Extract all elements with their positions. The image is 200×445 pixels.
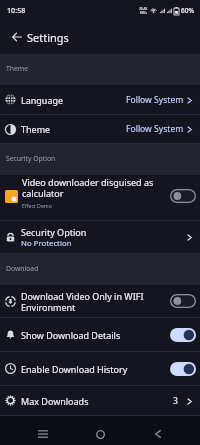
staticText: 60%: [181, 6, 194, 15]
staticText: Settings: [27, 30, 69, 45]
button[interactable]: Show Download Details: [0, 318, 200, 351]
staticText: Max Downloads: [21, 395, 89, 407]
button[interactable]: Language: [0, 85, 200, 114]
staticText: Effect Demo: [22, 202, 52, 209]
button[interactable]: Back: [147, 424, 169, 444]
button[interactable]: Enable Download History: [0, 352, 200, 385]
button[interactable]: Security Option: [0, 221, 200, 253]
button[interactable]: Home: [89, 424, 111, 444]
staticText: Theme: [6, 64, 29, 73]
staticText: Show Download Details: [21, 329, 121, 341]
button[interactable]: Download Video Only in WIFI Environment: [0, 285, 200, 317]
staticText: Download: [6, 264, 39, 273]
button[interactable]: Recent apps: [32, 424, 54, 444]
button[interactable]: Back: [6, 24, 28, 50]
staticText: KB/s: [140, 11, 147, 15]
staticText: Follow System: [126, 123, 184, 135]
button[interactable]: Max Downloads: [0, 386, 200, 415]
staticText: No Protection: [21, 238, 72, 249]
staticText: Security Option: [6, 154, 56, 163]
staticText: Video downloader disguised as calculator: [22, 176, 165, 199]
button[interactable]: Theme: [0, 115, 200, 143]
staticText: 20.4K: [139, 7, 148, 11]
staticText: 3: [173, 395, 178, 407]
staticText: Language: [21, 94, 64, 106]
staticText: Security Option: [21, 226, 87, 238]
button[interactable]: Video downloader disguised as calculator: [0, 175, 200, 220]
staticText: Theme: [21, 123, 51, 135]
staticText: Download Video Only in WIFI Environment: [21, 290, 165, 313]
staticText: 10:58: [7, 5, 26, 15]
staticText: Enable Download History: [21, 363, 128, 375]
staticText: Follow System: [126, 94, 184, 106]
